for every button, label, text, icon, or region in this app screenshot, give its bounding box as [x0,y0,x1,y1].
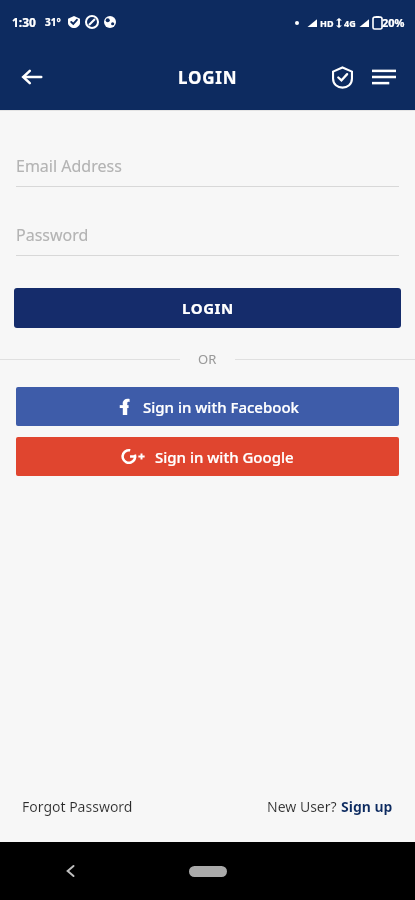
staticText: Email Address [16,155,122,177]
staticText: LOGIN [182,298,234,318]
staticText: Sign up [341,797,393,816]
button[interactable]: New User? [267,797,393,816]
button[interactable]: Sign in with Google [16,437,399,476]
staticText: New User? [267,797,341,816]
staticText: Password [16,224,89,246]
staticText: LOGIN [178,66,238,89]
button[interactable]: Menu [363,56,405,98]
button[interactable]: LOGIN [14,288,401,328]
staticText: HD [320,17,334,29]
staticText: Forgot Password [22,797,133,816]
button[interactable]: Back [54,854,88,888]
button[interactable]: Back [8,53,56,101]
button[interactable]: Password [16,224,399,256]
staticText: 1:30 [12,14,36,30]
button[interactable]: Forgot Password [22,797,133,816]
button[interactable]: Security [321,56,363,98]
staticText: 4G [344,17,356,29]
staticText: Sign in with Facebook [143,397,299,417]
staticText: 20% [382,15,405,30]
button[interactable]: Sign in with Facebook [16,387,399,426]
staticText: Sign in with Google [155,447,294,467]
staticText: 31° [45,15,61,29]
button[interactable]: Home [189,866,227,877]
button[interactable]: Email Address [16,155,399,187]
staticText: OR [198,350,217,368]
